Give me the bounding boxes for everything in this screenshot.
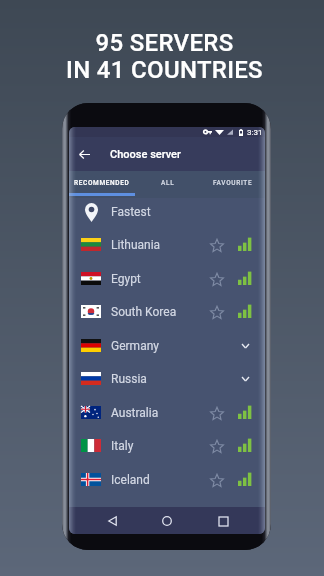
staticText: Lithuania [111, 238, 161, 252]
button[interactable]: South Korea [69, 295, 265, 329]
button[interactable]: Recents [210, 508, 236, 534]
button[interactable]: RECOMMENDED [69, 171, 135, 198]
button[interactable]: Home [154, 508, 180, 534]
button[interactable]: Iceland [69, 463, 265, 497]
staticText: Egypt [111, 272, 141, 286]
staticText: Australia [111, 406, 159, 420]
button[interactable]: Back [99, 508, 125, 534]
staticText: 95 SERVERS IN 41 COUNTRIES [66, 29, 263, 84]
button[interactable]: ALL [135, 171, 200, 198]
staticText: South Korea [111, 305, 177, 319]
button[interactable]: Germany [69, 329, 265, 363]
button[interactable]: Fastest [69, 195, 265, 229]
staticText: Fastest [111, 205, 151, 219]
button[interactable]: Lithuania [69, 228, 265, 262]
staticText: Italy [111, 439, 134, 453]
button[interactable]: Favourite [205, 230, 229, 260]
button[interactable]: Favourite [205, 431, 229, 461]
button[interactable]: Expand [230, 364, 260, 394]
button[interactable]: Australia [69, 396, 265, 430]
button[interactable]: Back [69, 137, 100, 171]
button[interactable]: Favourite [205, 398, 229, 428]
button[interactable]: FAVOURITE [200, 171, 265, 198]
button[interactable]: Russia [69, 362, 265, 396]
staticText: RECOMMENDED [74, 179, 130, 187]
staticText: ALL [161, 179, 175, 187]
button[interactable]: Favourite [205, 264, 229, 294]
staticText: FAVOURITE [213, 179, 253, 187]
button[interactable]: Expand [230, 331, 260, 361]
staticText: Choose server [110, 148, 181, 161]
button[interactable]: Italy [69, 429, 265, 463]
staticText: 3:31 [247, 128, 263, 137]
staticText: Russia [111, 372, 147, 386]
staticText: Germany [111, 339, 159, 353]
button[interactable]: Favourite [205, 297, 229, 327]
staticText: Iceland [111, 473, 150, 487]
button[interactable]: Favourite [205, 465, 229, 495]
button[interactable]: Egypt [69, 262, 265, 296]
